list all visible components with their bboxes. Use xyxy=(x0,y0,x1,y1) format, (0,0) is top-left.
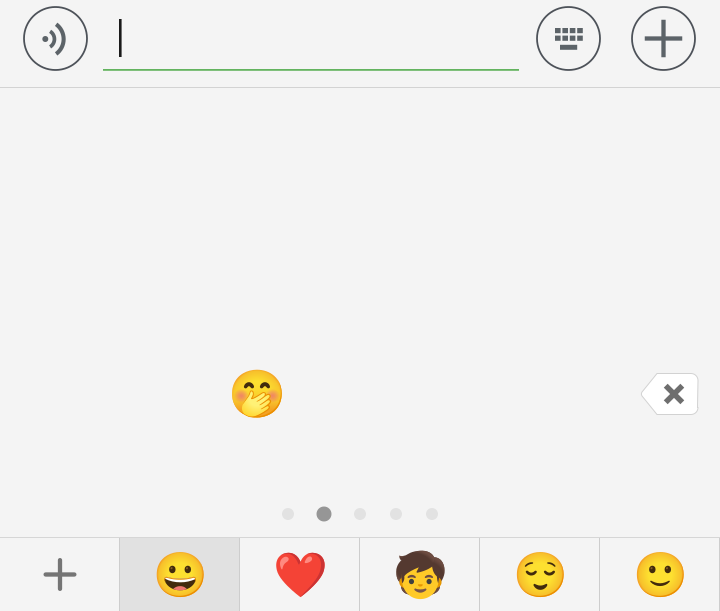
staticText: 😀 xyxy=(152,549,207,600)
button[interactable]: Recent xyxy=(600,538,720,611)
staticText: 🤭 xyxy=(228,367,286,421)
button[interactable]: Stickers xyxy=(480,538,600,611)
staticText: ❤️ xyxy=(272,549,327,600)
button[interactable]: Add xyxy=(632,7,695,70)
button[interactable]: Face with hand over mouth emoji xyxy=(231,368,283,420)
button[interactable]: People xyxy=(360,538,480,611)
button[interactable]: Hearts xyxy=(240,538,360,611)
button[interactable]: Keyboard xyxy=(537,7,600,70)
staticText: 🧒 xyxy=(392,549,447,600)
button[interactable]: Add sticker pack xyxy=(0,538,120,611)
button[interactable]: Voice message xyxy=(24,7,87,70)
staticText: 🙂 xyxy=(632,549,687,600)
staticText: 😌 xyxy=(512,549,567,600)
button[interactable]: Smileys xyxy=(120,538,240,611)
button[interactable]: Delete xyxy=(639,373,698,415)
